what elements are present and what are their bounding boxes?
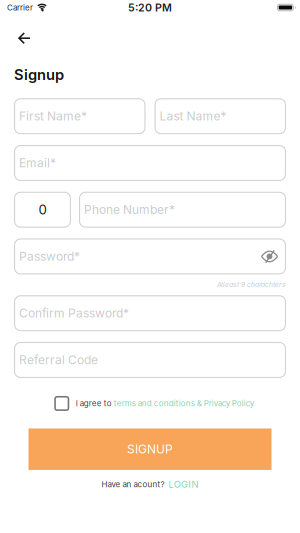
staticText: Carrier — [7, 3, 33, 12]
button[interactable]: Last Name* — [154, 98, 286, 134]
button[interactable]: LOGIN — [168, 479, 199, 490]
staticText: Have an acount? — [101, 480, 164, 489]
button[interactable]: SIGNUP — [28, 428, 271, 470]
button[interactable]: Referral Code — [14, 342, 286, 378]
staticText: Password* — [19, 249, 80, 264]
staticText: First Name* — [19, 109, 87, 123]
staticText: SIGNUP — [127, 442, 173, 456]
button[interactable]: First Name* — [14, 98, 145, 134]
button[interactable]: Country code — [14, 192, 71, 228]
button[interactable]: I agree to terms and conditions & Privac… — [54, 396, 69, 411]
staticText: Last Name* — [159, 109, 226, 123]
staticText: terms and conditions & Privacy Policy — [114, 399, 254, 408]
staticText: I agree to — [76, 399, 114, 408]
button[interactable]: Phone Number* — [79, 192, 286, 228]
button[interactable]: Back — [0, 15, 38, 49]
button[interactable]: Confirm Password* — [14, 295, 286, 331]
staticText: LOGIN — [168, 479, 199, 490]
staticText: 5:20 PM — [128, 1, 172, 14]
button[interactable]: I agree to — [76, 399, 254, 408]
button[interactable]: Password — [14, 238, 286, 274]
staticText: 0 — [38, 202, 46, 217]
staticText: Referral Code — [19, 353, 98, 367]
staticText: Confirm Password* — [19, 306, 129, 320]
button[interactable]: Email* — [14, 145, 286, 181]
staticText: Email* — [19, 156, 56, 170]
staticText: Signup — [14, 66, 64, 83]
staticText: Atleast 9 charachters — [217, 281, 286, 288]
button[interactable]: Show password — [261, 250, 286, 263]
staticText: Phone Number* — [84, 203, 175, 217]
